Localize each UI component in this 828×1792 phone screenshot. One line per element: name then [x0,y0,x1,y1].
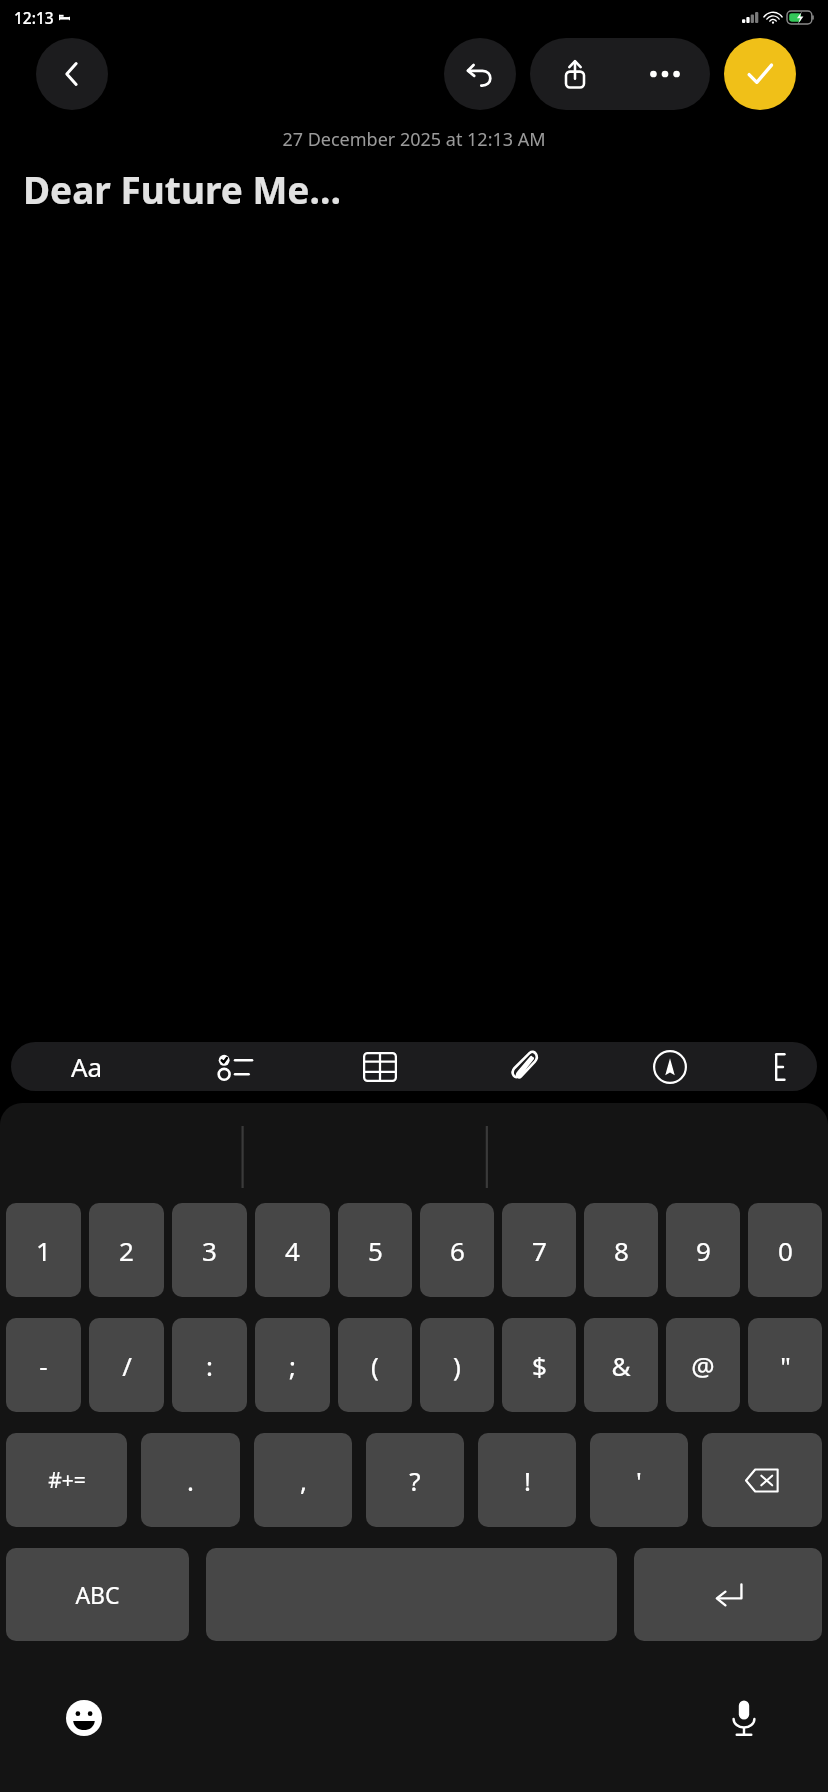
button[interactable]: : [172,1318,247,1412]
staticText: 7 [532,1233,547,1268]
button[interactable]: - [6,1318,81,1412]
staticText: 3 [202,1233,217,1268]
button[interactable]: 6 [420,1203,494,1297]
staticText: 12:13 [14,7,54,28]
button[interactable]: ? [366,1433,464,1527]
button[interactable]: Table [307,1042,452,1091]
button[interactable]: Text format [11,1042,162,1091]
button[interactable]: " [748,1318,822,1412]
button[interactable]: Done [724,38,796,110]
staticText: / [122,1348,132,1383]
button[interactable]: Undo [444,38,516,110]
button[interactable]: ABC [6,1548,189,1641]
button[interactable]: Markup [597,1042,742,1091]
staticText: Dear Future Me… [23,164,342,214]
button[interactable]: ; [255,1318,330,1412]
button[interactable]: @ [666,1318,740,1412]
button[interactable]: $ [502,1318,576,1412]
staticText: ; [289,1348,296,1383]
staticText: 6 [450,1233,465,1268]
staticText: : [206,1348,213,1383]
staticText: 1 [36,1233,51,1268]
button[interactable]: 8 [584,1203,658,1297]
staticText: #+= [48,1466,86,1495]
staticText: 0 [778,1233,793,1268]
button[interactable]: More options [620,38,710,110]
button[interactable]: ' [590,1433,688,1527]
staticText: @ [691,1348,715,1383]
button[interactable]: Attach [452,1042,597,1091]
staticText: $ [532,1348,547,1383]
button[interactable]: 7 [502,1203,576,1297]
button[interactable]: #+= [6,1433,127,1527]
staticText: 8 [614,1233,629,1268]
button[interactable]: Share [530,38,620,110]
staticText: 27 December 2025 at 12:13 AM [282,127,546,152]
staticText: 2 [119,1233,134,1268]
button[interactable]: 1 [6,1203,81,1297]
staticText: ( [371,1348,379,1383]
button[interactable]: ( [338,1318,412,1412]
button[interactable]: ! [478,1433,576,1527]
button[interactable]: . [141,1433,240,1527]
button[interactable]: & [584,1318,658,1412]
staticText: & [611,1348,631,1383]
button[interactable]: , [254,1433,352,1527]
button[interactable]: Dictation [712,1686,776,1750]
staticText: " [780,1348,791,1383]
button[interactable]: More [742,1042,817,1091]
staticText: . [187,1463,194,1498]
button[interactable]: Checklist [162,1042,307,1091]
staticText: - [39,1348,48,1383]
staticText: ? [409,1463,421,1498]
button[interactable]: 5 [338,1203,412,1297]
button[interactable]: / [89,1318,164,1412]
staticText: ! [524,1463,531,1498]
staticText: ) [453,1348,461,1383]
staticText: 9 [696,1233,711,1268]
button[interactable]: Back [36,38,108,110]
staticText: ABC [75,1579,120,1610]
staticText: Aa [71,1049,103,1084]
staticText: , [300,1463,307,1498]
button[interactable]: Delete [702,1433,822,1527]
button[interactable]: 9 [666,1203,740,1297]
button[interactable]: 0 [748,1203,822,1297]
button[interactable]: ) [420,1318,494,1412]
button[interactable]: 4 [255,1203,330,1297]
button[interactable]: 2 [89,1203,164,1297]
button[interactable]: Return [634,1548,822,1641]
staticText: ' [636,1463,642,1498]
button[interactable]: Emoji [52,1686,116,1750]
staticText: 5 [368,1233,383,1268]
staticText: 4 [285,1233,300,1268]
button[interactable]: 3 [172,1203,247,1297]
